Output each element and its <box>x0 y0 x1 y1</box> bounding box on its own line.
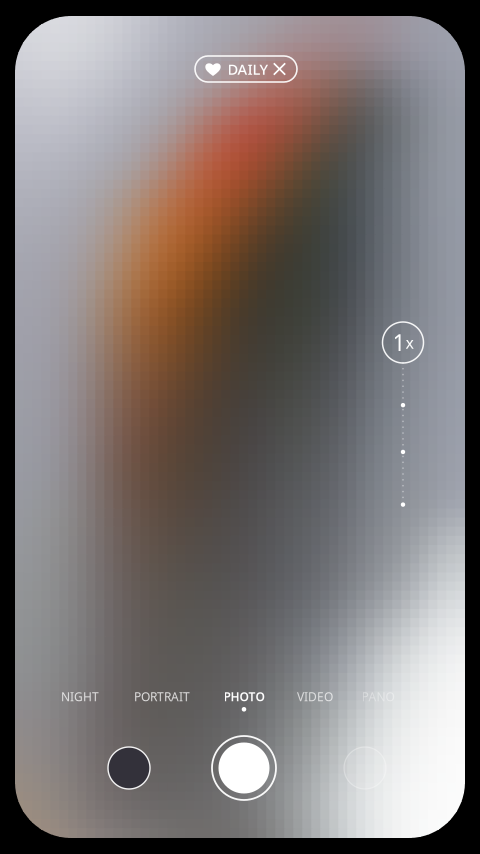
staticText: PANO <box>361 688 394 704</box>
staticText: PHOTO <box>223 688 264 704</box>
button[interactable]: DAILY <box>195 56 297 82</box>
staticText: VIDEO <box>297 688 333 704</box>
button[interactable]: VIDEO <box>269 689 361 721</box>
staticText: NIGHT <box>61 688 99 704</box>
button[interactable]: Photo library <box>108 747 150 789</box>
button[interactable]: NIGHT <box>34 689 126 721</box>
staticText: x <box>405 332 413 353</box>
button[interactable]: 1 <box>382 322 423 363</box>
staticText: DAILY <box>227 59 268 79</box>
button[interactable]: PANO <box>332 689 424 721</box>
staticText: PORTRAIT <box>134 688 190 704</box>
button[interactable]: Switch camera <box>344 747 386 789</box>
staticText: 1 <box>392 327 405 357</box>
button[interactable]: PORTRAIT <box>116 689 208 721</box>
button[interactable]: PHOTO <box>198 689 290 721</box>
button[interactable]: Take photo <box>211 735 277 801</box>
